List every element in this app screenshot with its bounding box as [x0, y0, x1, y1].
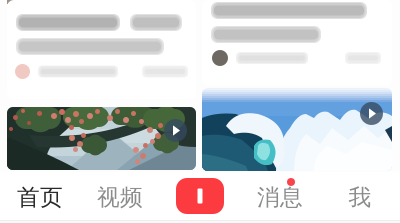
staticText: 视频 — [97, 184, 143, 211]
button[interactable]: Create post — [176, 178, 224, 214]
button[interactable] — [7, 0, 196, 99]
button[interactable]: 视频 — [80, 172, 160, 223]
button[interactable]: 首页 — [0, 172, 80, 223]
staticText: 消息 — [257, 184, 303, 211]
button[interactable] — [202, 0, 392, 86]
button[interactable]: Play wave video — [202, 88, 392, 171]
button[interactable]: 我 — [320, 172, 400, 223]
button[interactable]: Play forest video — [7, 107, 196, 170]
staticText: 首页 — [17, 184, 63, 211]
button[interactable]: 消息 — [240, 172, 320, 223]
staticText: 我 — [348, 184, 371, 211]
